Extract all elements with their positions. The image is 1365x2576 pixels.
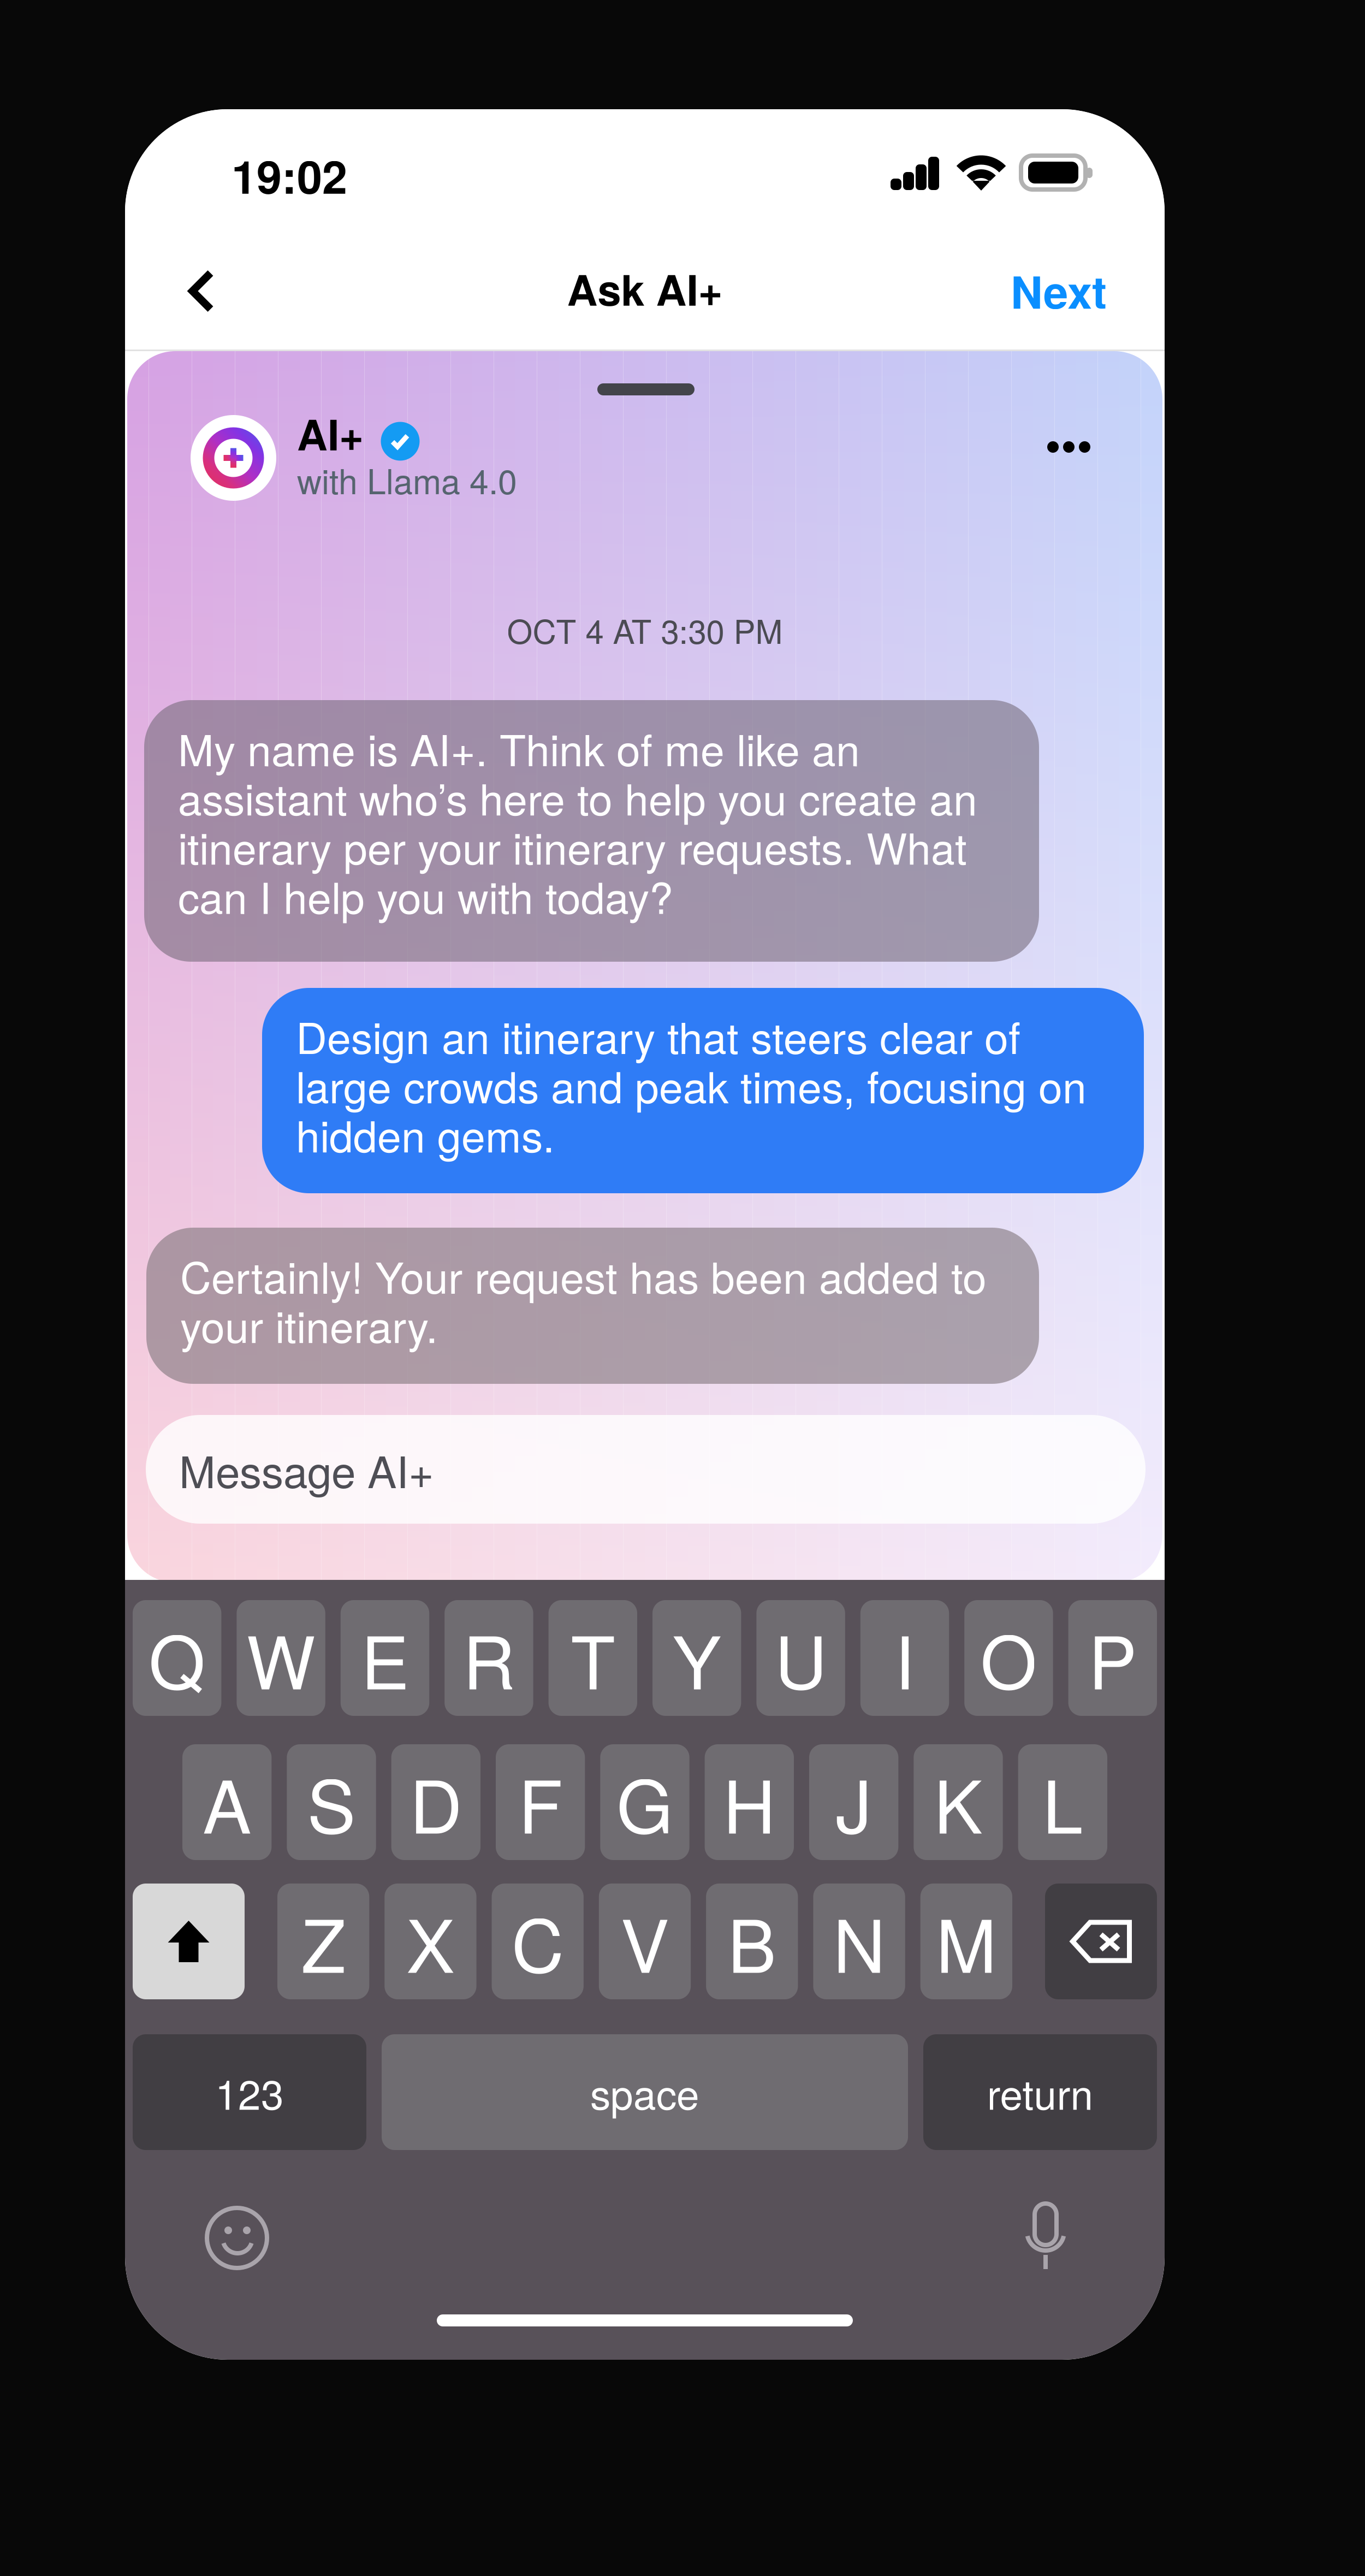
button[interactable]: Message AI+ xyxy=(146,1415,1146,1524)
button[interactable]: W xyxy=(237,1600,325,1716)
button[interactable]: Emoji xyxy=(201,2202,283,2284)
staticText: H xyxy=(723,1750,775,1854)
staticText: 123 xyxy=(215,2063,284,2121)
button[interactable]: L xyxy=(1018,1744,1107,1860)
button[interactable]: F xyxy=(496,1744,585,1860)
staticText: with Llama 4.0 xyxy=(297,455,517,504)
staticText: O xyxy=(980,1606,1037,1710)
button[interactable]: H xyxy=(705,1744,794,1860)
button[interactable]: G xyxy=(600,1744,689,1860)
staticText: OCT 4 AT 3:30 PM xyxy=(507,606,783,653)
button[interactable]: M xyxy=(920,1884,1012,1999)
staticText: X xyxy=(406,1889,455,1994)
button[interactable]: C xyxy=(492,1884,584,1999)
staticText: Message AI+ xyxy=(179,1438,434,1501)
staticText: K xyxy=(934,1750,983,1854)
staticText: I xyxy=(895,1606,915,1710)
button[interactable]: B xyxy=(706,1884,798,1999)
staticText: L xyxy=(1042,1750,1083,1854)
button[interactable]: Back xyxy=(155,247,248,335)
staticText: P xyxy=(1088,1606,1137,1710)
staticText: Q xyxy=(149,1606,205,1710)
button[interactable]: D xyxy=(391,1744,480,1860)
staticText: return xyxy=(987,2063,1093,2121)
button[interactable]: Backspace xyxy=(1045,1884,1157,1999)
button[interactable]: O xyxy=(964,1600,1053,1716)
staticText: Design an itinerary that steers clear of… xyxy=(296,1011,1087,1159)
staticText: U xyxy=(775,1606,827,1710)
button[interactable]: V xyxy=(599,1884,691,1999)
staticText: T xyxy=(571,1606,615,1710)
staticText: D xyxy=(410,1750,462,1854)
button[interactable]: P xyxy=(1068,1600,1157,1716)
staticText: M xyxy=(936,1889,997,1994)
button[interactable]: U xyxy=(756,1600,845,1716)
staticText: N xyxy=(833,1889,885,1994)
staticText: J xyxy=(835,1750,872,1854)
staticText: Next xyxy=(1011,259,1107,322)
staticText: V xyxy=(621,1889,669,1994)
staticText: B xyxy=(728,1889,776,1994)
button[interactable]: return xyxy=(923,2034,1157,2150)
button[interactable]: Dictate xyxy=(1004,2198,1086,2285)
staticText: W xyxy=(247,1606,315,1710)
button[interactable]: Q xyxy=(133,1600,221,1716)
staticText: Y xyxy=(673,1606,721,1710)
button[interactable]: More options xyxy=(1047,441,1090,453)
staticText: G xyxy=(616,1750,673,1854)
staticText: Z xyxy=(301,1889,345,1994)
button[interactable]: space xyxy=(382,2034,908,2150)
staticText: S xyxy=(307,1750,356,1854)
staticText: My name is AI+. Think of me like an assi… xyxy=(178,723,977,920)
staticText: C xyxy=(511,1889,564,1994)
button[interactable]: N xyxy=(813,1884,905,1999)
button[interactable]: X xyxy=(385,1884,476,1999)
button[interactable]: T xyxy=(549,1600,637,1716)
button[interactable]: I xyxy=(860,1600,949,1716)
staticText: Ask AI+ xyxy=(567,258,723,319)
button[interactable]: 123 xyxy=(133,2034,366,2150)
button[interactable]: K xyxy=(914,1744,1003,1860)
staticText: space xyxy=(590,2063,699,2121)
button[interactable]: J xyxy=(809,1744,898,1860)
button[interactable]: S xyxy=(287,1744,376,1860)
staticText: 19:02 xyxy=(232,143,347,208)
button[interactable]: A xyxy=(182,1744,272,1860)
button[interactable]: Z xyxy=(277,1884,369,1999)
staticText: F xyxy=(518,1750,562,1854)
button[interactable]: R xyxy=(445,1600,533,1716)
staticText: Certainly! Your request has been added t… xyxy=(180,1251,987,1349)
staticText: A xyxy=(203,1750,251,1854)
staticText: R xyxy=(463,1606,515,1710)
button[interactable]: E xyxy=(341,1600,429,1716)
staticText: E xyxy=(361,1606,409,1710)
staticText: AI+ xyxy=(297,403,364,463)
button[interactable]: Next xyxy=(933,259,1121,322)
button[interactable]: Shift xyxy=(133,1884,245,1999)
button[interactable]: Y xyxy=(652,1600,741,1716)
